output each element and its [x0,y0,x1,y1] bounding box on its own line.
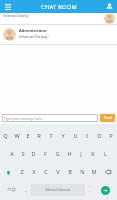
button[interactable]: Bahasa Indonesia [31,184,85,196]
staticText: Q [3,132,8,140]
button[interactable]: Y [57,126,69,145]
button[interactable]: Administrator [0,25,117,44]
button[interactable]: Z [16,163,28,181]
button[interactable]: Open navigation menu [2,1,13,12]
staticText: A [10,150,14,158]
button[interactable]: P [105,126,117,145]
button[interactable]: U [69,126,81,145]
button[interactable]: Shift [1,163,16,181]
staticText: Z [20,168,24,176]
button[interactable]: , [21,182,31,198]
button[interactable]: C [40,163,52,181]
staticText: R [37,132,41,140]
button[interactable]: O [93,126,105,145]
staticText: Y [61,132,65,140]
staticText: W [14,132,20,140]
staticText: F [44,150,47,158]
staticText: S [21,150,25,158]
button[interactable]: V [52,163,64,181]
staticText: B [68,168,72,176]
button[interactable]: Type your message here... [2,114,98,122]
staticText: G [55,150,60,158]
staticText: Type your message here... [4,116,45,120]
button[interactable]: Send [100,114,115,122]
staticText: Selamat Datang ! [3,13,31,18]
button[interactable]: Q [0,126,11,145]
staticText: J [80,150,82,158]
button[interactable]: N [76,163,88,181]
staticText: K [91,150,95,158]
staticText: ?1☺ [7,187,16,193]
staticText: I [86,132,88,140]
button[interactable]: Enter [95,182,116,198]
button[interactable]: Backspace [100,163,116,181]
staticText: Selamat Datang ! [19,34,50,39]
staticText: Send [104,116,112,120]
button[interactable]: S [17,145,28,163]
staticText: E [26,132,30,140]
button[interactable]: D [28,145,39,163]
button[interactable]: A [6,145,17,163]
button[interactable]: Selamat Datang ! [0,13,117,24]
staticText: X [32,168,36,176]
staticText: L [104,150,107,158]
button[interactable]: I [81,126,93,145]
button[interactable]: L [99,145,111,163]
button[interactable]: W [11,126,22,145]
staticText: H [67,150,72,158]
staticText: CHAT ROOM [41,3,77,11]
button[interactable]: F [39,145,51,163]
staticText: O [97,132,102,140]
button[interactable]: E [22,126,33,145]
button[interactable]: R [33,126,45,145]
staticText: Administrator [19,28,48,33]
button[interactable]: B [64,163,76,181]
button[interactable]: G [51,145,63,163]
button[interactable]: M [88,163,100,181]
staticText: P [109,132,113,140]
button[interactable]: Profile [104,1,115,12]
staticText: , [25,187,27,194]
staticText: U [73,132,78,140]
staticText: T [49,132,53,140]
staticText: Bahasa Indonesia [45,188,71,192]
button[interactable]: J [75,145,87,163]
button[interactable]: X [28,163,40,181]
button[interactable]: T [45,126,57,145]
staticText: N [80,168,85,176]
button[interactable]: ?1☺ [1,182,21,198]
button[interactable]: H [63,145,75,163]
staticText: V [56,168,60,176]
staticText: C [44,168,48,176]
staticText: M [91,168,97,176]
staticText: . [89,187,91,194]
button[interactable]: K [87,145,99,163]
staticText: D [31,150,36,158]
